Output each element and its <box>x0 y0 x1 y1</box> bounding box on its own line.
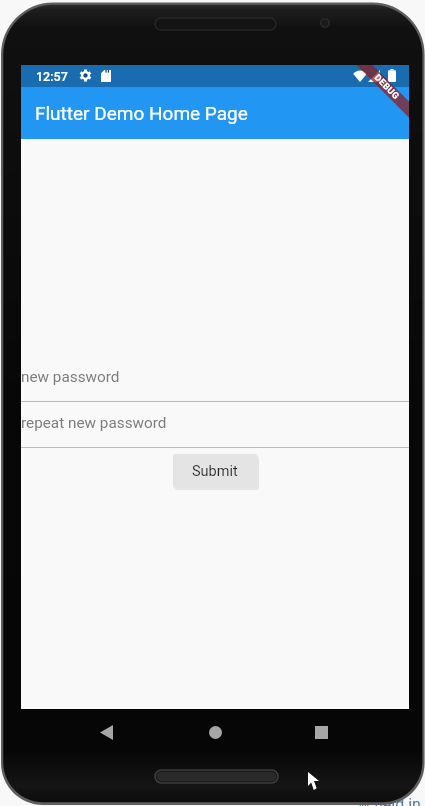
staticText: repeat new password <box>21 414 167 432</box>
staticText: Submit <box>192 463 238 480</box>
button[interactable]: Recent apps <box>291 709 352 756</box>
button[interactable]: Submit <box>173 454 257 488</box>
button[interactable]: Back <box>76 709 137 756</box>
button[interactable]: Home <box>184 709 246 756</box>
staticText: new password <box>21 368 120 386</box>
staticText: Flutter Demo Home Page <box>35 102 248 124</box>
button[interactable]: repeat new password <box>21 402 409 448</box>
button[interactable]: new password <box>21 356 409 402</box>
button[interactable]: Flutter Demo Home Page <box>21 87 409 139</box>
staticText: w field in <box>358 795 421 806</box>
staticText: 12:57 <box>36 69 68 84</box>
